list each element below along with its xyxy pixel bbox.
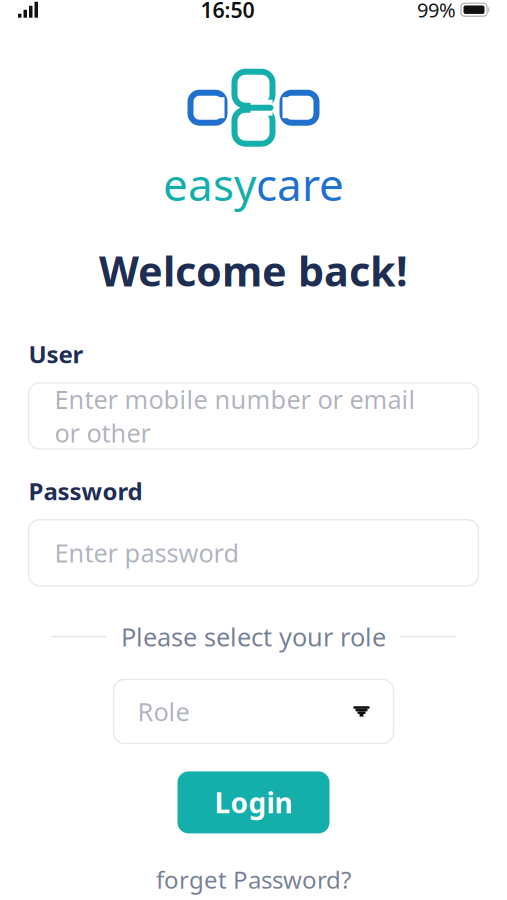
staticText: Welcome back! [99,243,408,298]
staticText: care [256,155,344,213]
staticText: Role [137,695,189,728]
staticText: User [28,338,83,370]
button[interactable]: Login [177,771,329,833]
staticText: forget Password? [156,863,351,895]
staticText: Enter password [54,536,239,570]
button[interactable]: forget Password? [146,859,361,899]
button[interactable]: Role [113,679,393,743]
staticText: Enter mobile number or email or other [54,382,415,450]
staticText: Login [214,784,292,821]
staticText: Please select your role [121,620,386,653]
staticText: 16:50 [200,0,254,24]
staticText: easy [163,155,256,213]
staticText: Password [28,475,142,507]
staticText: 99% [417,0,456,23]
